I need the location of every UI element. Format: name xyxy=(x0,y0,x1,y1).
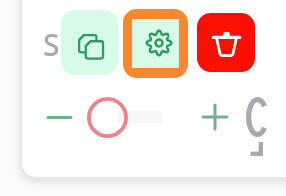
button[interactable]: Settings xyxy=(123,9,188,78)
button[interactable]: Delete xyxy=(197,13,255,72)
staticText: S xyxy=(43,24,60,65)
button[interactable]: Duplicate xyxy=(61,10,118,75)
